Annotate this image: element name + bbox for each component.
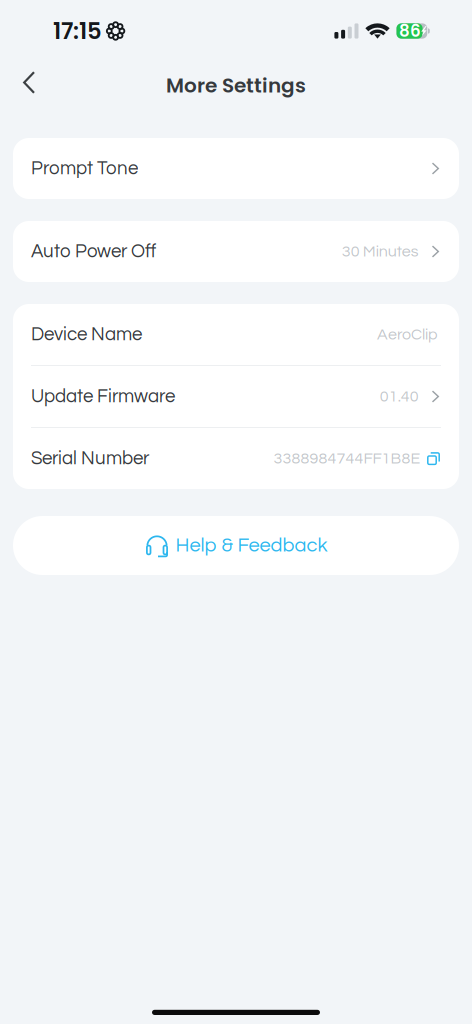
staticText: 86 <box>399 19 421 43</box>
staticText: Device Name <box>31 325 142 344</box>
button[interactable]: Device Name <box>13 304 459 365</box>
button[interactable]: Help & Feedback <box>0 516 472 575</box>
button[interactable]: Back <box>0 65 49 106</box>
staticText: More Settings <box>166 71 306 99</box>
staticText: 3388984744FF1B8E <box>274 450 421 467</box>
button[interactable]: Update Firmware <box>13 366 459 427</box>
staticText: Help & Feedback <box>176 535 328 556</box>
staticText: Serial Number <box>31 449 149 468</box>
staticText: 30 Minutes <box>342 243 419 260</box>
staticText: Update Firmware <box>31 387 175 406</box>
button[interactable]: Prompt Tone <box>13 138 459 199</box>
staticText: 17:15 <box>53 15 102 47</box>
staticText: Prompt Tone <box>31 159 138 178</box>
staticText: 01.40 <box>380 388 419 405</box>
staticText: AeroClip <box>377 326 438 343</box>
button[interactable]: Auto Power Off <box>13 221 459 282</box>
button[interactable]: Serial Number <box>13 428 459 489</box>
staticText: Auto Power Off <box>31 242 156 261</box>
